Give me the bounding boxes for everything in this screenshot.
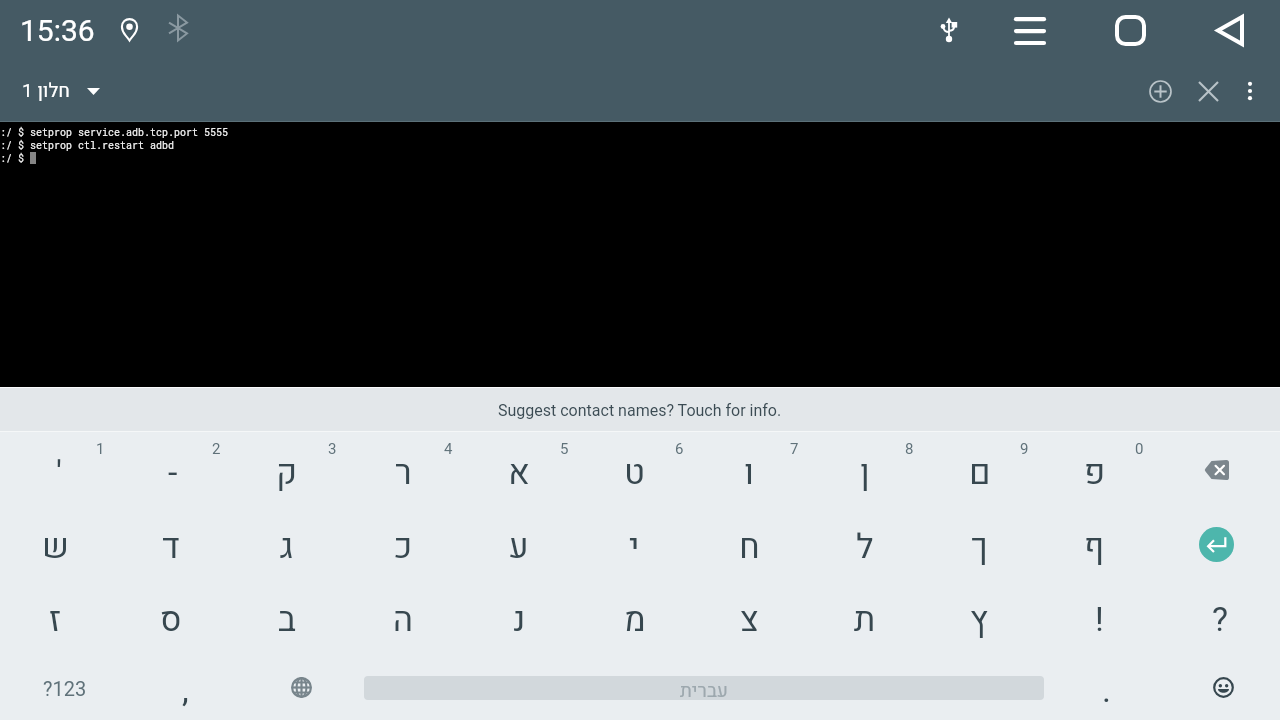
staticText: ?: [1212, 595, 1229, 645]
staticText: :/ $ setprop service.adb.tcp.port 5555: [0, 126, 229, 139]
button[interactable]: ?: [1155, 579, 1270, 652]
staticText: 1: [96, 440, 105, 458]
button[interactable]: Emoji: [1166, 652, 1280, 720]
staticText: ת: [854, 595, 876, 645]
staticText: ם: [969, 448, 991, 498]
button[interactable]: .: [1046, 652, 1166, 720]
button[interactable]: ו: [695, 432, 810, 506]
staticText: ף: [1084, 522, 1105, 572]
staticText: 7: [790, 440, 799, 458]
button[interactable]: ב: [232, 579, 348, 652]
button[interactable]: ע: [464, 506, 580, 579]
button[interactable]: פ: [1040, 432, 1155, 506]
staticText: ה: [393, 595, 413, 645]
button[interactable]: מ: [580, 579, 695, 652]
staticText: ש: [42, 522, 69, 572]
staticText: י: [629, 522, 640, 572]
staticText: :/ $ setprop ctl.restart adbd: [0, 139, 175, 152]
button[interactable]: ?123: [0, 652, 130, 720]
button[interactable]: ן: [810, 432, 925, 506]
staticText: ,: [182, 666, 189, 716]
button[interactable]: ק: [232, 432, 348, 506]
staticText: 5: [560, 440, 569, 458]
button[interactable]: ש: [0, 506, 116, 579]
staticText: ן: [860, 448, 870, 498]
button[interactable]: ד: [116, 506, 232, 579]
staticText: 15:36: [20, 13, 95, 48]
button[interactable]: !: [1040, 579, 1155, 652]
staticText: ו: [744, 448, 755, 498]
button[interactable]: ם: [925, 432, 1040, 506]
button[interactable]: -: [116, 432, 232, 506]
button[interactable]: ח: [695, 506, 810, 579]
staticText: צ: [740, 595, 759, 645]
button[interactable]: ל: [810, 506, 925, 579]
button[interactable]: ך: [925, 506, 1040, 579]
staticText: פ: [1084, 448, 1106, 498]
staticText: 3: [328, 440, 337, 458]
button[interactable]: חלון 1: [10, 69, 112, 113]
staticText: ע: [509, 522, 529, 572]
button[interactable]: ': [0, 432, 116, 506]
staticText: 4: [444, 440, 453, 458]
button[interactable]: ,: [130, 652, 240, 720]
staticText: מ: [624, 595, 646, 645]
button[interactable]: New window: [1138, 69, 1182, 113]
staticText: ל: [856, 522, 874, 572]
button[interactable]: כ: [348, 506, 464, 579]
button[interactable]: ר: [348, 432, 464, 506]
staticText: Suggest contact names? Touch for info.: [498, 401, 782, 420]
button[interactable]: ץ: [925, 579, 1040, 652]
button[interactable]: ס: [116, 579, 232, 652]
button[interactable]: עברית: [364, 676, 1044, 700]
staticText: ך: [971, 522, 988, 572]
button[interactable]: ג: [232, 506, 348, 579]
staticText: ט: [624, 448, 645, 498]
staticText: חלון 1: [22, 77, 70, 105]
button[interactable]: Suggest contact names? Touch for info.: [0, 388, 1280, 432]
staticText: !: [1095, 595, 1104, 645]
staticText: ?123: [43, 677, 87, 700]
staticText: 8: [905, 440, 914, 458]
staticText: כ: [394, 522, 413, 572]
button[interactable]: ז: [0, 579, 116, 652]
button[interactable]: Recents: [996, 4, 1064, 56]
staticText: ד: [162, 522, 180, 572]
staticText: :/ $: [0, 152, 25, 165]
staticText: ז: [49, 595, 62, 645]
staticText: 2: [212, 440, 221, 458]
staticText: ח: [739, 522, 760, 572]
button[interactable]: Close window: [1186, 69, 1230, 113]
button[interactable]: ת: [810, 579, 925, 652]
button[interactable]: More options: [1230, 71, 1270, 111]
staticText: .: [1102, 666, 1111, 716]
button[interactable]: Back: [1196, 4, 1264, 56]
staticText: ': [56, 448, 62, 498]
staticText: א: [508, 448, 530, 498]
button[interactable]: ה: [348, 579, 464, 652]
staticText: ג: [280, 522, 294, 572]
button[interactable]: Change language: [240, 652, 362, 720]
button[interactable]: ט: [580, 432, 695, 506]
staticText: ר: [395, 448, 412, 498]
staticText: ב: [278, 595, 296, 645]
button[interactable]: Home: [1096, 4, 1164, 56]
staticText: 6: [675, 440, 684, 458]
staticText: נ: [513, 595, 526, 645]
staticText: ק: [276, 448, 298, 498]
button[interactable]: Backspace: [1155, 432, 1270, 506]
button[interactable]: ף: [1040, 506, 1155, 579]
staticText: ץ: [970, 595, 989, 645]
staticText: עברית: [680, 677, 728, 700]
staticText: 9: [1020, 440, 1029, 458]
staticText: ס: [160, 595, 182, 645]
staticText: -: [168, 448, 178, 498]
button[interactable]: א: [464, 432, 580, 506]
button[interactable]: Enter: [1155, 506, 1270, 579]
button[interactable]: נ: [464, 579, 580, 652]
staticText: 0: [1135, 440, 1144, 458]
other: Enter: [1199, 527, 1234, 562]
button[interactable]: צ: [695, 579, 810, 652]
button[interactable]: י: [580, 506, 695, 579]
other: Backspace: [1204, 460, 1229, 480]
